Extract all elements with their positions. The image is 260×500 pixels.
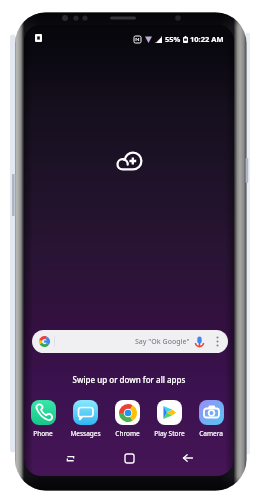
staticText: Chrome [115, 429, 140, 438]
staticText: 10:22 AM [190, 34, 224, 44]
button[interactable]: Home [117, 446, 141, 470]
staticText: Camera [199, 429, 223, 438]
button[interactable]: Camera [191, 400, 231, 438]
button[interactable]: Chrome [107, 400, 147, 438]
button[interactable]: Say "Ok Google" [32, 330, 228, 353]
staticText: Phone [33, 429, 53, 438]
button[interactable]: Messages [65, 400, 105, 438]
staticText: Messages [70, 429, 101, 438]
staticText: Say "Ok Google" [135, 337, 190, 347]
staticText: 55% [165, 34, 181, 44]
button[interactable]: Play Store [149, 400, 189, 438]
button[interactable]: Phone [24, 400, 63, 438]
staticText: Swipe up or down for all apps [24, 374, 234, 385]
button[interactable]: Back [176, 446, 200, 470]
button[interactable]: Recents [58, 446, 82, 470]
staticText: Play Store [154, 429, 185, 438]
